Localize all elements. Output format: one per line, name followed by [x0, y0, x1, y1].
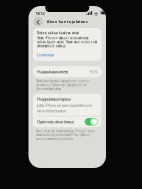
staticText: 18.12 — [35, 11, 44, 16]
button[interactable]: Huippukapasiteetti — [28, 66, 106, 77]
staticText: Huippukapasiteetti — [37, 69, 68, 74]
staticText: Tämä ilmoittaa akun kapasiteetin uuteen … — [36, 79, 89, 91]
staticText: Jotta iPhone on pian käytettävissä akun … — [37, 103, 92, 113]
button[interactable]: Optimoitu akun lataus — [33, 116, 101, 127]
button[interactable]: Lisätietoja — [37, 48, 54, 57]
staticText: Akun kestoiän parantamiseksi iPhone oppi… — [36, 129, 95, 141]
staticText: Akun kunto ja lataus — [47, 19, 88, 24]
staticText: Lisätietoja — [37, 52, 54, 57]
button[interactable]: Huippulatausnopeus — [33, 94, 101, 116]
staticText: 83 % — [89, 69, 97, 74]
staticText: Tärkeä akkua koskeva viesti — [37, 31, 79, 35]
staticText: Tämän iPhonen akkua ei voida vahvistaa a… — [37, 36, 97, 48]
staticText: Optimoitu akun lataus — [37, 119, 74, 124]
button[interactable]: Back — [31, 15, 44, 28]
staticText: Huippulatausnopeus — [37, 96, 71, 102]
